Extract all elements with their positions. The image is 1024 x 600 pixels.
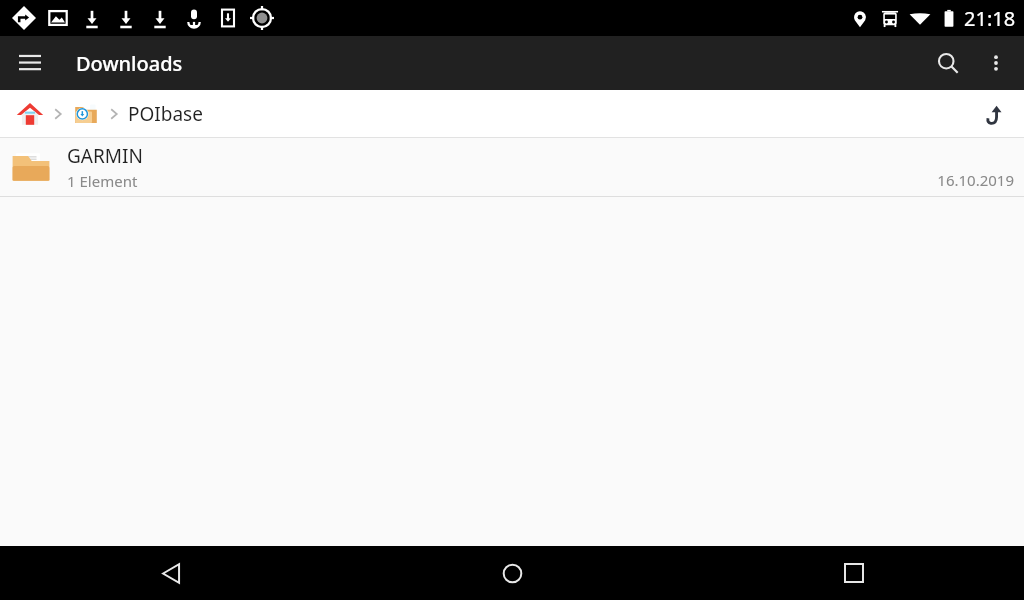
staticText: Downloads <box>76 50 183 77</box>
staticText: GARMIN <box>67 143 143 169</box>
button[interactable]: Search <box>924 39 972 87</box>
staticText: 21:18 <box>964 5 1016 32</box>
button[interactable]: Back <box>0 546 342 600</box>
button[interactable]: Go up one level <box>972 91 1018 137</box>
button[interactable]: POIbase <box>124 95 207 133</box>
button[interactable]: More options <box>972 39 1020 87</box>
button[interactable]: Recent apps <box>683 546 1024 600</box>
staticText: 1 Element <box>67 171 138 191</box>
button[interactable]: Downloads folder <box>68 96 104 132</box>
staticText: POIbase <box>128 101 203 127</box>
staticText: 16.10.2019 <box>937 170 1014 190</box>
button[interactable]: GARMIN <box>0 138 1024 196</box>
button[interactable]: Open navigation drawer <box>8 41 52 85</box>
button[interactable]: Home <box>342 546 683 600</box>
button[interactable]: Home <box>12 96 48 132</box>
